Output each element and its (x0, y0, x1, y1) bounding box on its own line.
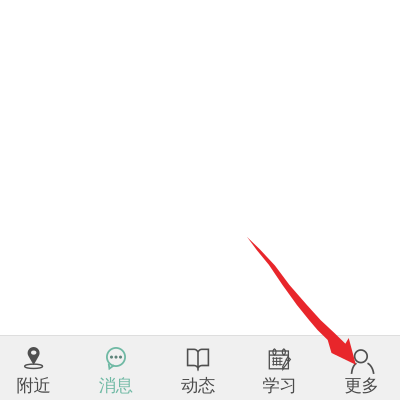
button[interactable]: 消息 (76, 336, 156, 400)
button[interactable]: 学习 (240, 336, 320, 400)
button[interactable]: 动态 (158, 336, 238, 400)
staticText: 消息 (99, 375, 133, 396)
button[interactable]: 附近 (0, 336, 74, 400)
button[interactable]: 更多 (322, 336, 400, 400)
staticText: 动态 (181, 375, 215, 396)
staticText: 学习 (263, 375, 297, 396)
staticText: 附近 (17, 375, 51, 396)
staticText: 更多 (345, 375, 379, 396)
